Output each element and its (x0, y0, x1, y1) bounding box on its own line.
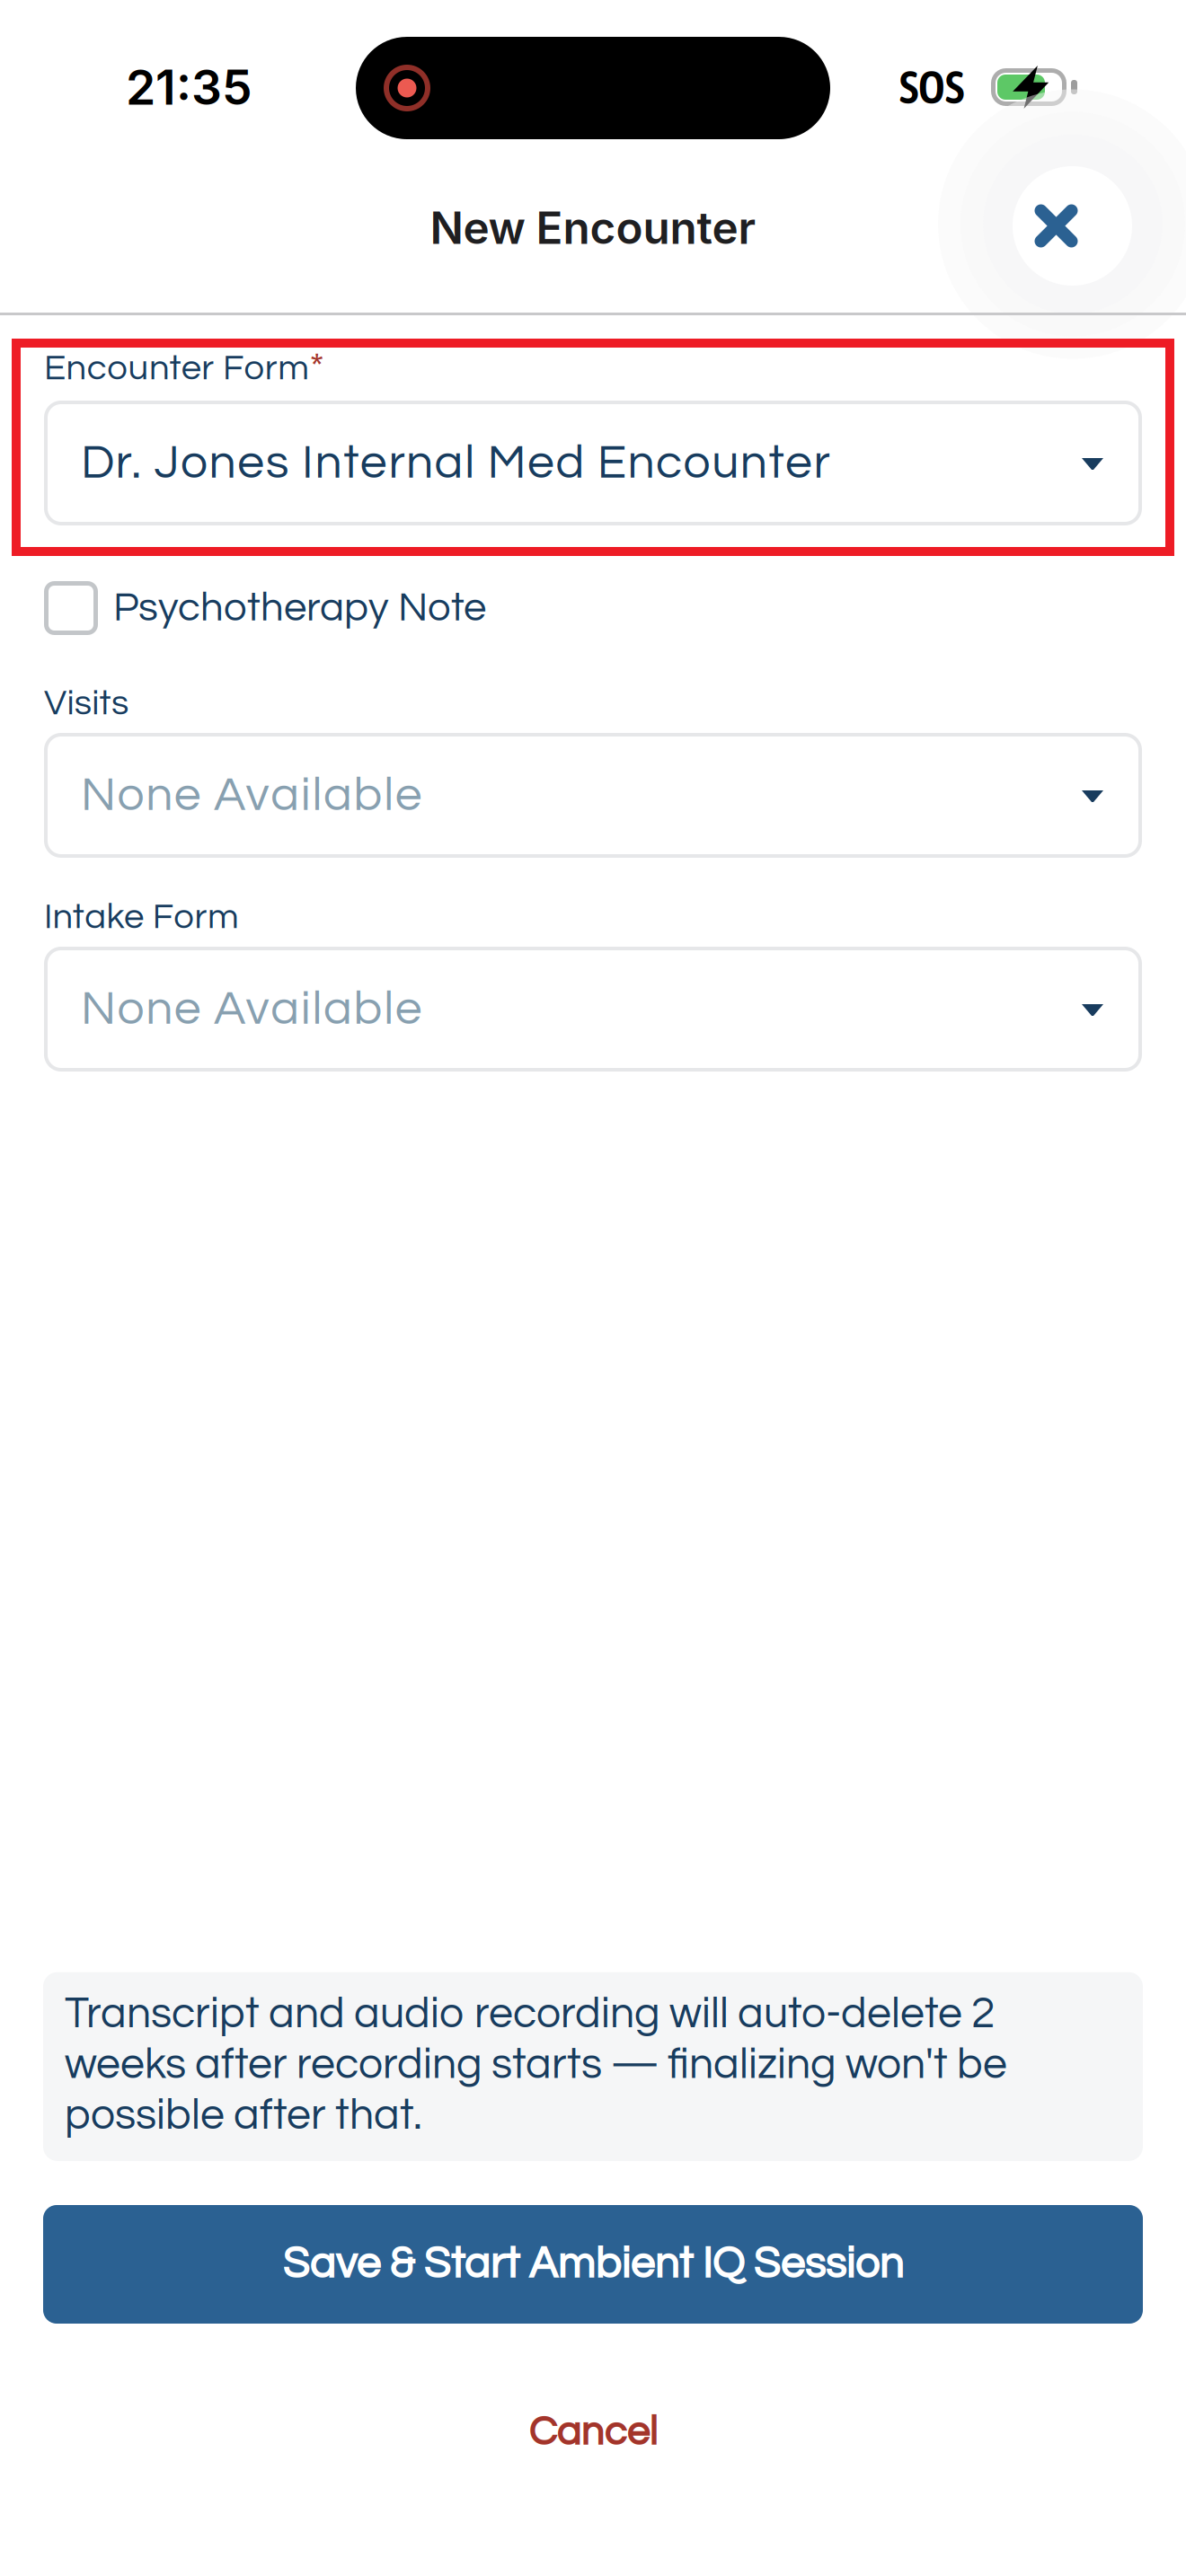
button[interactable]: Cancel (0, 2387, 1186, 2477)
button[interactable]: Close (1013, 175, 1132, 295)
button[interactable]: None Available (44, 947, 1142, 1072)
staticText: None Available (81, 771, 422, 820)
button[interactable]: Save & Start Ambient IQ Session (43, 2205, 1143, 2324)
button[interactable]: Psychotherapy Note (0, 581, 1186, 635)
staticText: SOS (899, 61, 964, 113)
staticText: Encounter Form (44, 350, 309, 387)
staticText: * (309, 347, 325, 389)
staticText: Cancel (529, 2411, 657, 2453)
staticText: Transcript and audio recording will auto… (65, 1992, 1007, 2138)
staticText: 21:35 (126, 58, 252, 116)
staticText: Dr. Jones Internal Med Encounter (81, 438, 830, 488)
staticText: New Encounter (430, 201, 756, 255)
staticText: Save & Start Ambient IQ Session (283, 2242, 903, 2287)
button[interactable]: Dr. Jones Internal Med Encounter (44, 401, 1142, 525)
staticText: Psychotherapy Note (113, 587, 486, 629)
button[interactable]: None Available (44, 733, 1142, 858)
staticText: Intake Form (44, 899, 239, 936)
staticText: Visits (44, 685, 128, 722)
staticText: None Available (81, 984, 422, 1034)
